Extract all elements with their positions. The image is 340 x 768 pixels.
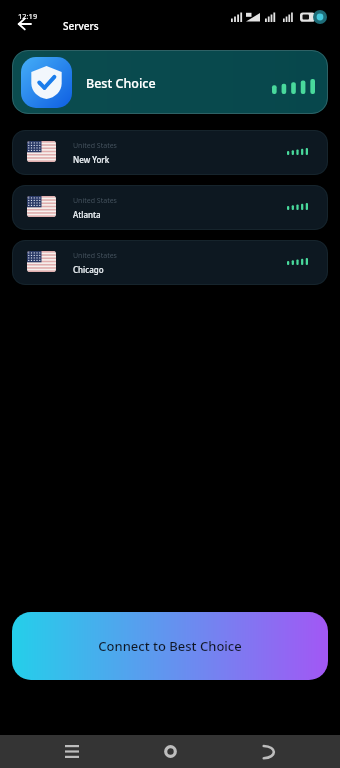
- button[interactable]: Back: [11, 11, 37, 37]
- staticText: Connect to Best Choice: [98, 637, 242, 655]
- staticText: Chicago: [73, 264, 104, 275]
- staticText: Servers: [63, 19, 99, 33]
- staticText: Best Choice: [86, 75, 156, 92]
- button[interactable]: Home: [150, 735, 190, 768]
- button[interactable]: Recent apps: [52, 735, 92, 768]
- staticText: United States: [73, 141, 117, 151]
- staticText: 12:19: [18, 11, 38, 21]
- staticText: United States: [73, 196, 117, 206]
- staticText: Atlanta: [73, 209, 101, 220]
- button[interactable]: United States: [12, 185, 328, 230]
- staticText: New York: [73, 154, 110, 165]
- button[interactable]: Connect to Best Choice: [12, 612, 328, 680]
- button[interactable]: Back: [250, 735, 290, 768]
- button[interactable]: United States: [12, 130, 328, 175]
- staticText: United States: [73, 251, 117, 261]
- button[interactable]: United States: [12, 240, 328, 285]
- button[interactable]: Best Choice: [12, 50, 328, 114]
